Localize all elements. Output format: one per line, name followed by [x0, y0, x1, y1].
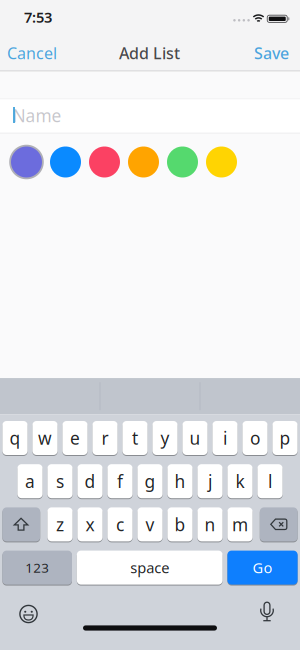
button[interactable]: Shift [2, 507, 40, 541]
button[interactable]: o [242, 421, 268, 455]
button[interactable]: z [47, 507, 73, 541]
button[interactable]: n [197, 507, 223, 541]
staticText: r [101, 426, 108, 449]
button[interactable]: g [137, 464, 163, 498]
button[interactable]: d [77, 464, 103, 498]
button[interactable]: w [32, 421, 58, 455]
staticText: space [130, 558, 169, 577]
button[interactable]: q [2, 421, 28, 455]
button[interactable]: u [182, 421, 208, 455]
button[interactable]: r [92, 421, 118, 455]
button[interactable]: Cancel [7, 42, 57, 64]
staticText: Name [12, 104, 61, 127]
staticText: v [145, 513, 154, 536]
button[interactable]: Delete [260, 507, 298, 541]
staticText: x [85, 513, 94, 536]
staticText: e [70, 426, 80, 449]
staticText: s [56, 470, 64, 493]
staticText: q [9, 426, 20, 449]
button[interactable]: 123 [2, 551, 72, 585]
button[interactable]: space [77, 551, 223, 585]
button[interactable]: Blue [47, 144, 83, 180]
button[interactable]: Emoji [13, 599, 43, 629]
button[interactable]: x [77, 507, 103, 541]
button[interactable]: v [137, 507, 163, 541]
staticText: z [56, 513, 64, 536]
button[interactable]: Yellow [203, 144, 239, 180]
staticText: Go [252, 558, 272, 577]
button[interactable]: p [272, 421, 298, 455]
button[interactable]: a [17, 464, 43, 498]
staticText: c [116, 513, 124, 536]
button[interactable]: f [107, 464, 133, 498]
button[interactable]: b [167, 507, 193, 541]
staticText: b [174, 513, 185, 536]
staticText: j [208, 470, 212, 493]
button[interactable]: m [227, 507, 253, 541]
staticText: i [223, 426, 227, 449]
button[interactable]: Red [86, 144, 122, 180]
staticText: k [235, 470, 244, 493]
staticText: w [38, 426, 52, 449]
button[interactable]: Purple [8, 144, 44, 180]
button[interactable]: e [62, 421, 88, 455]
button[interactable]: Orange [125, 144, 161, 180]
staticText: Cancel [7, 42, 57, 64]
button[interactable]: h [167, 464, 193, 498]
staticText: m [232, 513, 248, 536]
staticText: h [174, 470, 185, 493]
button[interactable]: Green [164, 144, 200, 180]
button[interactable]: c [107, 507, 133, 541]
staticText: l [268, 470, 272, 493]
button[interactable]: l [257, 464, 283, 498]
staticText: p [279, 426, 290, 449]
button[interactable]: Save [254, 42, 289, 64]
staticText: o [250, 426, 260, 449]
staticText: d [84, 470, 95, 493]
staticText: y [160, 426, 169, 449]
staticText: n [204, 513, 215, 536]
staticText: t [132, 426, 138, 449]
button[interactable]: t [122, 421, 148, 455]
staticText: u [189, 426, 200, 449]
button[interactable]: s [47, 464, 73, 498]
button[interactable]: i [212, 421, 238, 455]
staticText: 7:53 [24, 7, 52, 27]
staticText: Add List [119, 42, 180, 64]
button[interactable]: Home [83, 625, 217, 631]
button[interactable]: Name [0, 98, 300, 133]
button[interactable]: Go [227, 551, 298, 585]
staticText: g [144, 470, 155, 493]
staticText: Save [254, 42, 289, 64]
staticText: 123 [25, 559, 49, 576]
button[interactable]: j [197, 464, 223, 498]
button[interactable]: y [152, 421, 178, 455]
button[interactable]: k [227, 464, 253, 498]
button[interactable]: Dictate [254, 597, 280, 627]
staticText: a [25, 470, 35, 493]
staticText: f [117, 470, 123, 493]
